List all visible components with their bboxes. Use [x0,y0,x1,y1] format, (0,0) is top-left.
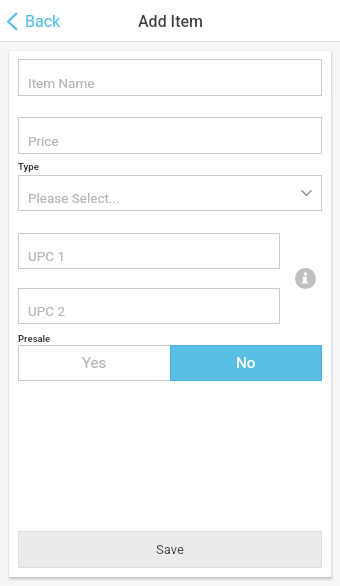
button[interactable]: Please Select... [18,175,322,211]
staticText: Yes [82,354,107,372]
staticText: Item Name [28,75,95,91]
staticText: Please Select... [28,190,120,206]
staticText: Add Item [138,12,203,31]
staticText: UPC 2 [28,303,65,319]
button[interactable]: UPC 2 [18,288,280,324]
button[interactable]: Information [295,268,316,289]
button[interactable]: Back [5,8,63,35]
staticText: No [236,354,256,372]
staticText: UPC 1 [28,248,65,264]
staticText: Back [25,12,61,31]
button[interactable]: UPC 1 [18,233,280,269]
staticText: Save [156,542,184,557]
staticText: Price [28,133,59,149]
staticText: Type [18,161,39,172]
button[interactable]: No [170,345,322,381]
button[interactable]: Item Name [18,59,322,96]
button[interactable]: Save [18,531,322,568]
staticText: Presale [18,333,51,344]
button[interactable]: Price [18,117,322,154]
button[interactable]: Yes [18,345,170,381]
